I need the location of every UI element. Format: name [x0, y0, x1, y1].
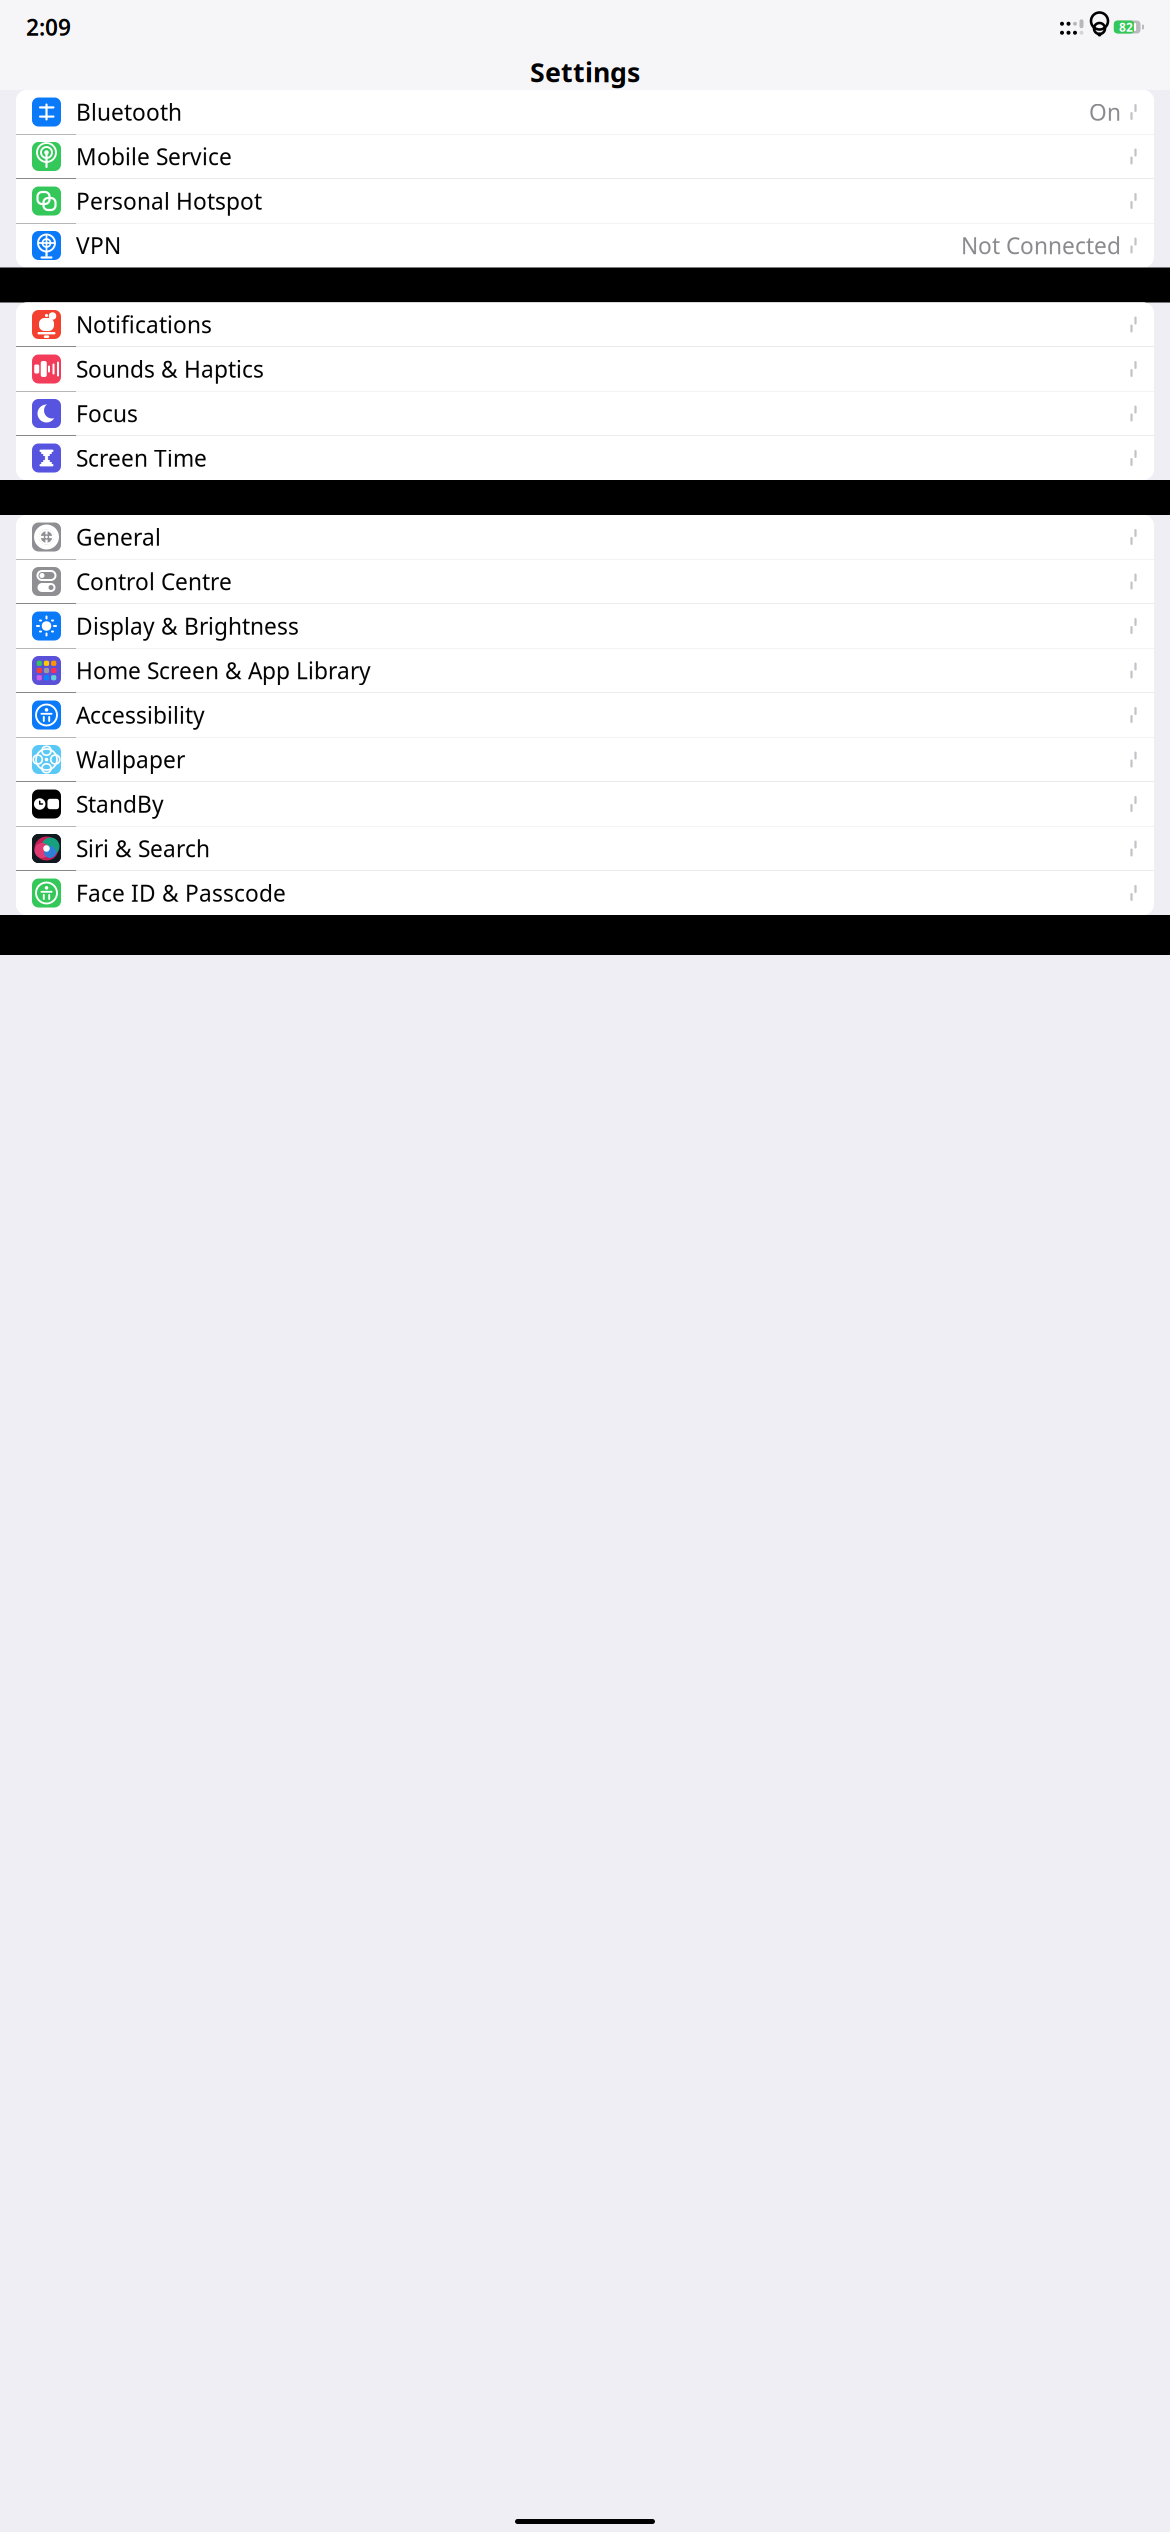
button[interactable]: Display & Brightness	[16, 604, 1154, 648]
button[interactable]: Face ID & Passcode	[16, 871, 1154, 915]
button[interactable]: Accessibility	[16, 693, 1154, 737]
staticText: Personal Hotspot	[76, 186, 262, 216]
staticText: Focus	[76, 398, 138, 428]
button[interactable]: Notifications	[16, 302, 1154, 347]
staticText: Screen Time	[76, 443, 207, 473]
staticText: Wallpaper	[76, 744, 185, 774]
staticText: Display & Brightness	[76, 611, 299, 641]
staticText: Home Screen & App Library	[76, 655, 371, 685]
button[interactable]: General	[16, 515, 1154, 559]
staticText: General	[76, 522, 161, 552]
button[interactable]: Mobile Service	[16, 134, 1154, 179]
staticText: Control Centre	[76, 566, 232, 596]
staticText: 2:09	[26, 12, 71, 42]
button[interactable]: Siri & Search	[16, 826, 1154, 871]
button[interactable]: Bluetooth	[16, 90, 1154, 134]
staticText: Not Connected	[961, 230, 1121, 260]
staticText: Notifications	[76, 309, 212, 339]
staticText: Siri & Search	[76, 833, 210, 863]
button[interactable]: Focus	[16, 391, 1154, 436]
button[interactable]: Control Centre	[16, 559, 1154, 604]
button[interactable]: Home Screen & App Library	[16, 648, 1154, 693]
staticText: Accessibility	[76, 700, 205, 730]
button[interactable]: Screen Time	[16, 436, 1154, 480]
staticText: Face ID & Passcode	[76, 878, 286, 908]
staticText: 82	[1119, 19, 1133, 35]
staticText: Sounds & Haptics	[76, 354, 264, 384]
button[interactable]: Wallpaper	[16, 737, 1154, 782]
button[interactable]: Sounds & Haptics	[16, 347, 1154, 391]
staticText: VPN	[76, 230, 121, 260]
staticText: On	[1089, 97, 1121, 127]
staticText: Settings	[530, 54, 640, 90]
button[interactable]: StandBy	[16, 782, 1154, 826]
staticText: Mobile Service	[76, 141, 232, 171]
staticText: Bluetooth	[76, 97, 182, 127]
staticText: StandBy	[76, 789, 164, 819]
button[interactable]: Personal Hotspot	[16, 179, 1154, 223]
button[interactable]: VPN	[16, 223, 1154, 267]
